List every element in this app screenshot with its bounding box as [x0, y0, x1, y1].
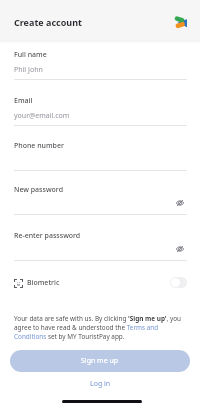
- staticText: Email: [14, 96, 33, 106]
- staticText: Sign me up: [81, 356, 119, 366]
- staticText: Create account: [14, 16, 82, 28]
- button[interactable]: Biometric toggle: [170, 277, 187, 288]
- button[interactable]: Show password: [176, 199, 184, 207]
- button[interactable]: Biometric: [13, 272, 77, 294]
- other: App logo: [174, 15, 187, 29]
- button[interactable]: Show password: [176, 245, 184, 253]
- button[interactable]: Sign me up: [10, 350, 190, 372]
- staticText: your@email.com: [14, 111, 70, 121]
- staticText: Your data are safe with us. By clicking …: [14, 314, 188, 341]
- staticText: New password: [14, 185, 64, 195]
- staticText: Full name: [14, 50, 47, 60]
- staticText: Biometric: [27, 278, 60, 288]
- staticText: Phone number: [14, 141, 64, 151]
- staticText: Log in: [90, 379, 111, 389]
- staticText: Re-enter passsword: [14, 231, 81, 241]
- button[interactable]: Log in: [78, 376, 123, 392]
- staticText: Phil John: [14, 65, 43, 75]
